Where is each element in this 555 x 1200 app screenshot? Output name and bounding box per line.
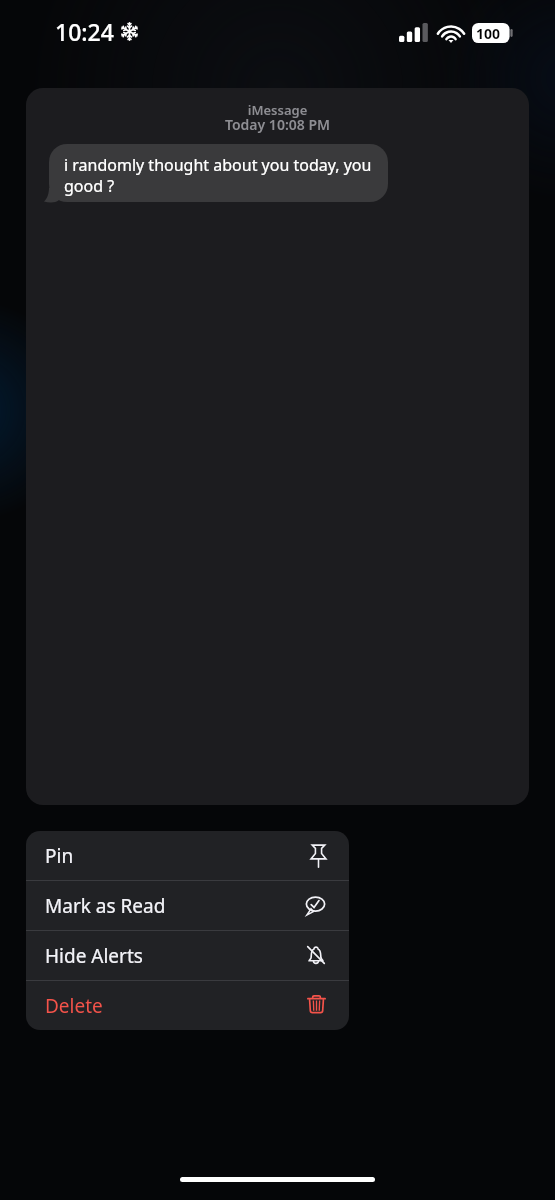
button[interactable]: Pin [26,831,349,880]
staticText: 100 [476,24,501,43]
button[interactable]: Hide Alerts [26,931,349,980]
staticText: iMessage [26,101,529,119]
staticText: Pin [45,843,74,869]
staticText: i randomly thought about you today, you … [64,154,380,197]
button[interactable]: Message preview from iMessage [26,88,529,805]
staticText: Mark as Read [45,893,166,919]
staticText: 10:24 [55,16,114,47]
staticText: Hide Alerts [45,943,143,969]
staticText: Today 10:08 PM [26,115,529,134]
button[interactable]: Delete [26,981,349,1030]
button[interactable]: Mark as Read [26,881,349,930]
staticText: Delete [45,993,103,1019]
